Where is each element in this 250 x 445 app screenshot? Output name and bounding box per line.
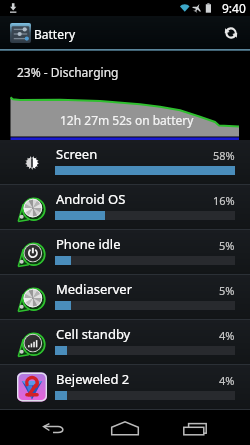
staticText: 5% bbox=[219, 283, 235, 298]
staticText: 4% bbox=[219, 373, 235, 388]
staticText: 12h 27m 52s on battery bbox=[60, 112, 194, 128]
button[interactable]: Refresh bbox=[215, 16, 247, 49]
staticText: 9:40 bbox=[222, 0, 246, 16]
staticText: Screen bbox=[56, 145, 98, 163]
staticText: Android OS bbox=[56, 190, 126, 208]
staticText: Cell standby bbox=[56, 325, 131, 343]
button[interactable]: Phone idle bbox=[0, 230, 250, 275]
staticText: 5% bbox=[219, 238, 235, 253]
staticText: Mediaserver bbox=[56, 280, 132, 298]
staticText: Phone idle bbox=[56, 235, 121, 253]
staticText: 16% bbox=[213, 193, 235, 208]
button[interactable]: Screen bbox=[0, 140, 250, 185]
button[interactable]: Android OS bbox=[0, 185, 250, 230]
button[interactable]: Cell standby bbox=[0, 320, 250, 365]
button[interactable]: Mediaserver bbox=[0, 275, 250, 320]
button[interactable]: Bejeweled 2 bbox=[0, 365, 250, 410]
staticText: 4% bbox=[219, 328, 235, 343]
staticText: 23% - Discharging bbox=[17, 64, 119, 80]
staticText: 58% bbox=[213, 148, 235, 163]
button[interactable]: Back bbox=[20, 411, 90, 445]
staticText: Battery bbox=[34, 26, 76, 42]
staticText: Bejeweled 2 bbox=[56, 370, 130, 388]
button[interactable]: Recent apps bbox=[160, 411, 230, 445]
button[interactable]: Home bbox=[90, 411, 160, 445]
